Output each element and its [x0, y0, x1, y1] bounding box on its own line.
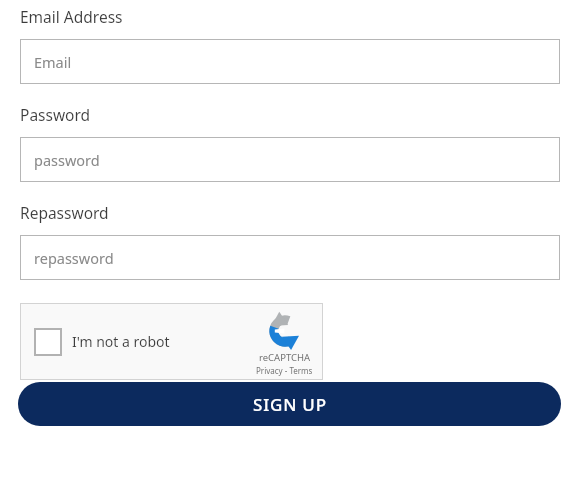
button[interactable]: Email	[20, 39, 560, 84]
staticText: Password	[20, 104, 91, 125]
button[interactable]: I'm not a robot checkbox	[34, 328, 62, 356]
staticText: Repassword	[20, 202, 109, 223]
staticText: I'm not a robot	[72, 332, 170, 351]
button[interactable]: password	[20, 137, 560, 182]
staticText: SIGN UP	[253, 393, 327, 416]
button[interactable]: repassword	[20, 235, 560, 280]
staticText: password	[34, 150, 100, 170]
staticText: Email	[34, 52, 72, 72]
staticText: reCAPTCHA	[259, 351, 311, 364]
staticText: Privacy - Terms	[256, 365, 313, 376]
staticText: Email Address	[20, 6, 123, 27]
staticText: repassword	[34, 248, 114, 268]
button[interactable]: SIGN UP	[18, 382, 561, 426]
button[interactable]: I'm not a robot checkbox	[20, 303, 323, 380]
